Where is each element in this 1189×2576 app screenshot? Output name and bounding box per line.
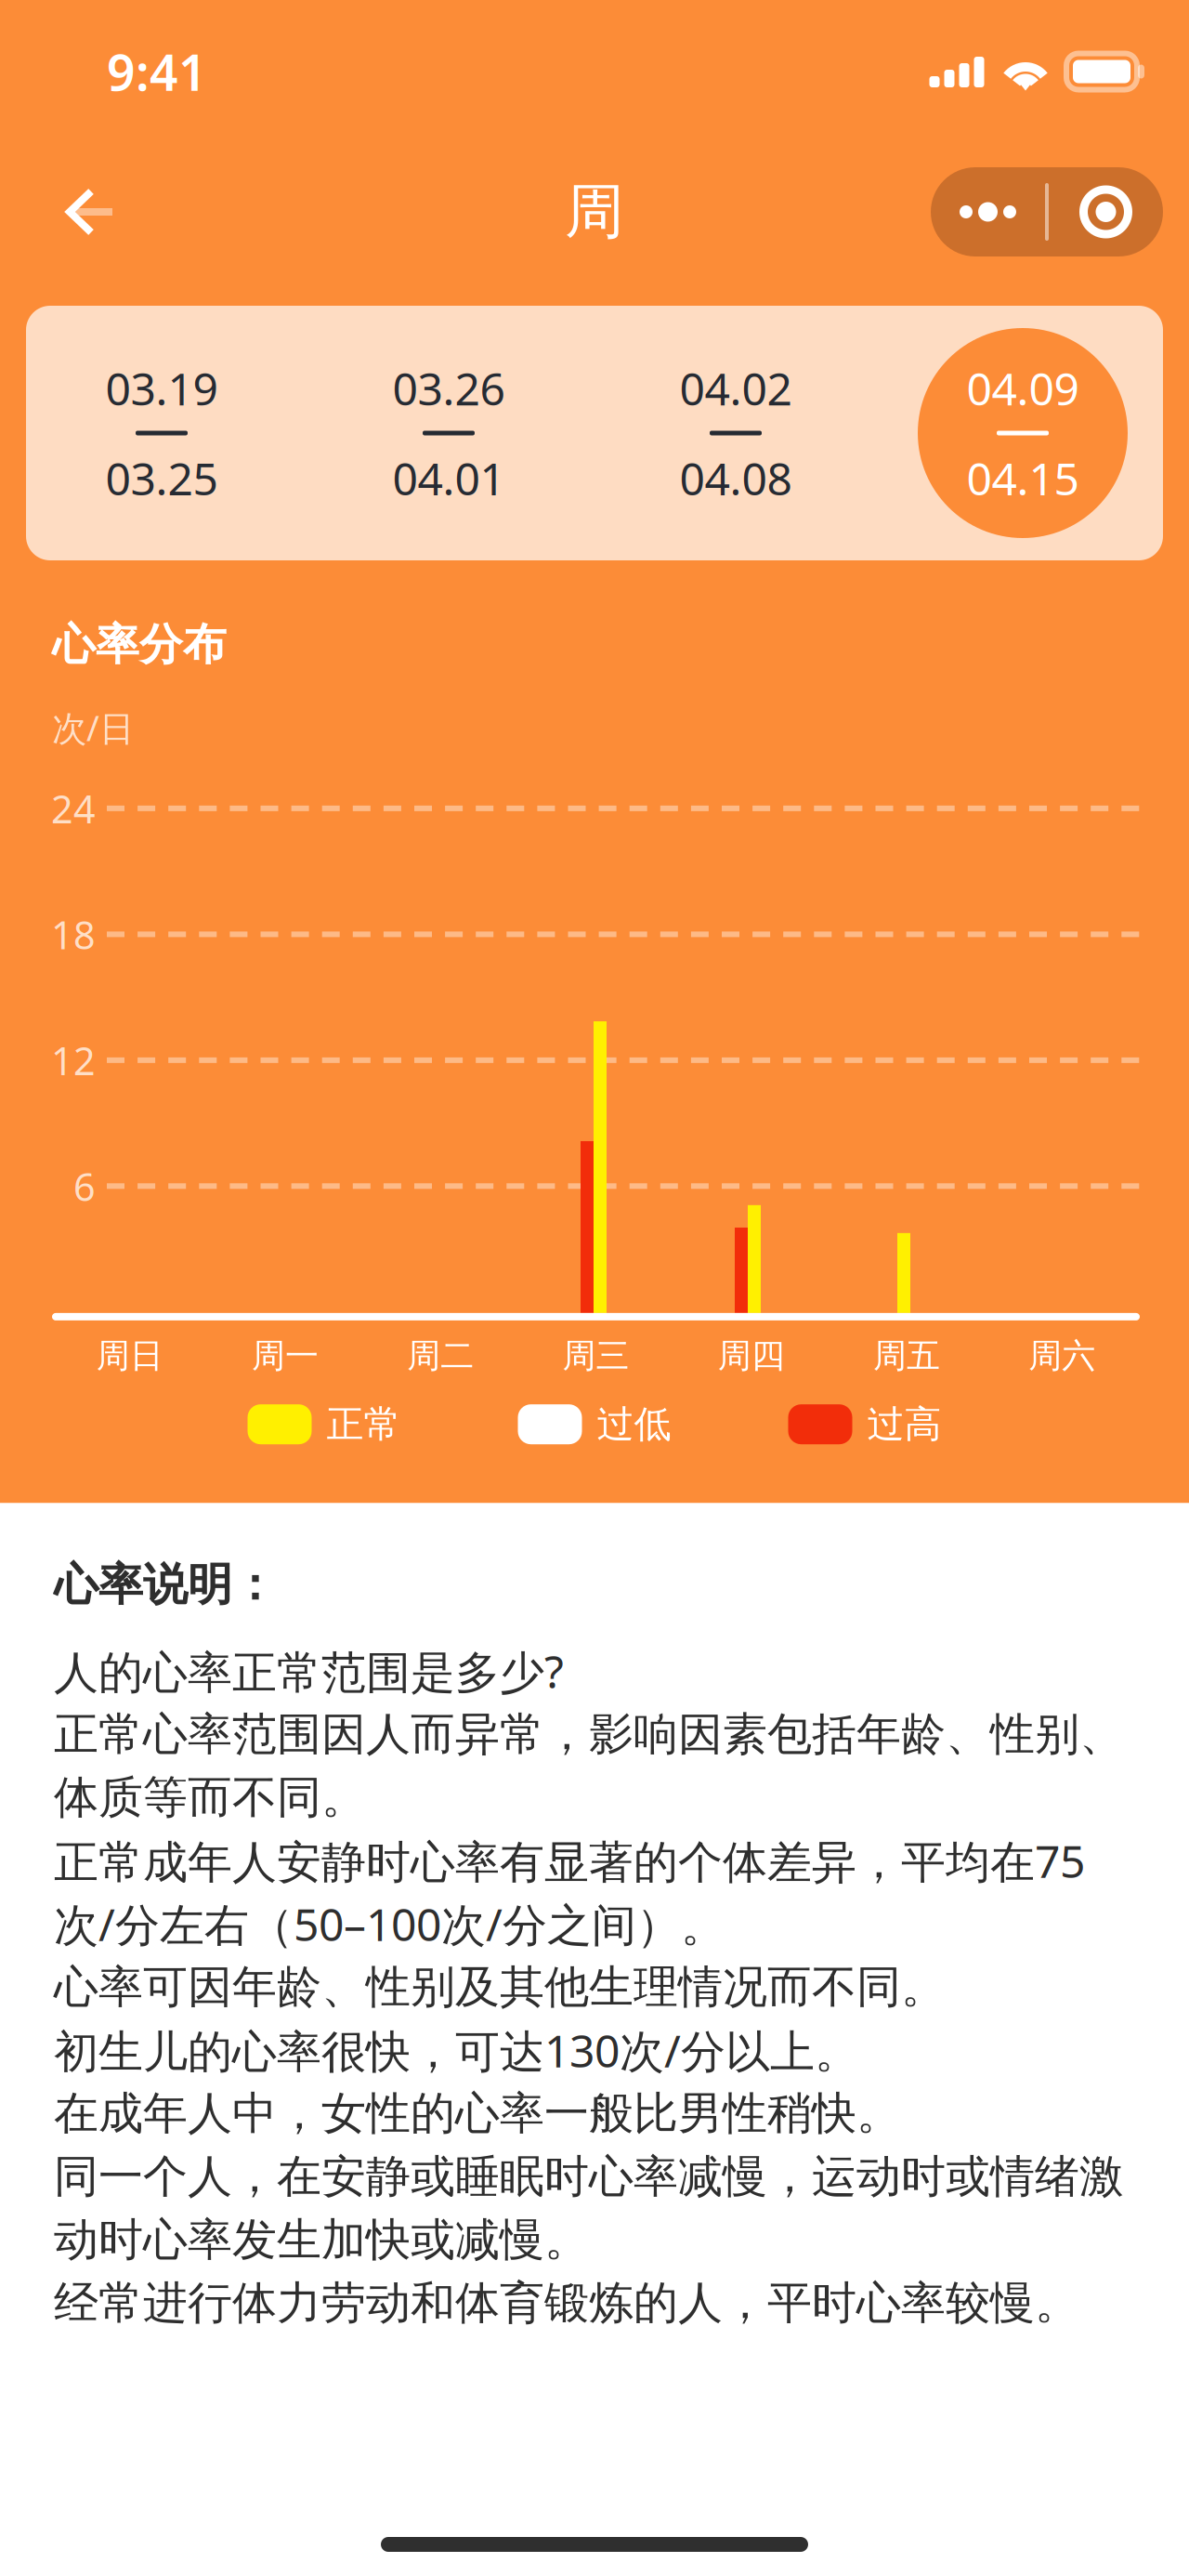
button[interactable]: 04.02 — [631, 328, 841, 538]
staticText: 心率可因年龄、性别及其他生理情况而不同。 — [54, 1960, 946, 2015]
staticText: 周六 — [1029, 1335, 1096, 1376]
staticText: 18 — [51, 909, 96, 960]
staticText: 04.02 — [679, 359, 792, 418]
staticText: 经常进行体力劳动和体育锻炼的人，平时心率较慢。 — [54, 2276, 1079, 2330]
staticText: 04.08 — [679, 448, 792, 508]
button[interactable]: 04.09 — [918, 328, 1128, 538]
staticText: 在成年人中，女性的心率一般比男性稍快。 — [54, 2086, 901, 2141]
staticText: 初生儿的心率很快，可达130次/分以上。 — [54, 2021, 859, 2080]
staticText: 24 — [51, 783, 96, 834]
staticText: 正常心率范围因人而异常，影响因素包括年龄、性别、 — [54, 1707, 1124, 1762]
staticText: 周三 — [562, 1335, 629, 1376]
staticText: 9:41 — [107, 39, 207, 104]
staticText: 周二 — [407, 1335, 474, 1376]
staticText: 同一个人，在安静或睡眠时心率减慢，运动时或情绪激 — [54, 2149, 1124, 2204]
staticText: 周 — [565, 175, 624, 248]
staticText: 过高 — [867, 1401, 941, 1447]
staticText: 动时心率发生加快或减慢。 — [54, 2212, 589, 2267]
staticText: 心率说明： — [54, 1557, 277, 1612]
button[interactable]: 返回 — [46, 167, 135, 256]
staticText: 周五 — [873, 1335, 940, 1376]
staticText: 正常成年人安静时心率有显著的个体差异，平均在75 — [54, 1831, 1085, 1890]
staticText: 03.19 — [105, 359, 218, 418]
button[interactable]: 03.26 — [344, 328, 554, 538]
staticText: 周日 — [96, 1335, 163, 1376]
staticText: 03.25 — [105, 448, 218, 508]
staticText: 体质等而不同。 — [54, 1770, 366, 1825]
staticText: 心率分布 — [52, 618, 227, 671]
staticText: 人的心率正常范围是多少? — [54, 1642, 564, 1701]
staticText: 04.01 — [392, 448, 505, 508]
staticText: 周四 — [718, 1335, 785, 1376]
button[interactable]: 更多选项 — [931, 167, 1163, 256]
button[interactable]: 03.19 — [57, 328, 267, 538]
staticText: 04.15 — [967, 448, 1079, 508]
staticText: 次/分左右（50–100次/分之间）。 — [54, 1894, 725, 1953]
staticText: 过低 — [597, 1401, 671, 1447]
staticText: 正常 — [327, 1401, 401, 1447]
staticText: 6 — [73, 1161, 96, 1212]
staticText: 04.09 — [967, 359, 1079, 418]
staticText: 次/日 — [52, 705, 134, 751]
staticText: 周一 — [252, 1335, 319, 1376]
staticText: 03.26 — [392, 359, 505, 418]
staticText: 12 — [51, 1035, 96, 1086]
